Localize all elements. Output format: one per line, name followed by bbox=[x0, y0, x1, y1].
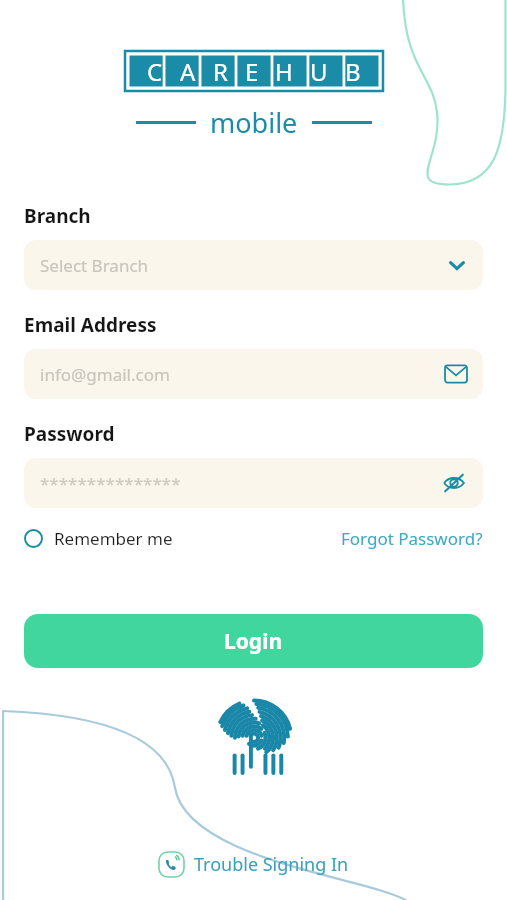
staticText: mobile bbox=[210, 104, 298, 141]
staticText: A bbox=[180, 55, 196, 88]
staticText: Remember me bbox=[54, 527, 173, 550]
button[interactable]: Remember me bbox=[24, 527, 173, 550]
staticText: Email Address bbox=[24, 312, 157, 338]
staticText: info@gmail.com bbox=[40, 363, 170, 386]
other: Email bbox=[445, 363, 467, 385]
staticText: R bbox=[213, 55, 228, 88]
button[interactable]: Show password bbox=[441, 470, 467, 496]
staticText: C bbox=[147, 55, 163, 88]
staticText: U bbox=[310, 55, 328, 88]
button[interactable]: info@gmail.com bbox=[24, 349, 483, 399]
button[interactable]: Login bbox=[24, 614, 483, 668]
staticText: Branch bbox=[24, 203, 91, 229]
staticText: *************** bbox=[40, 472, 181, 495]
staticText: Select Branch bbox=[40, 254, 149, 277]
staticText: Forgot Password? bbox=[341, 527, 483, 550]
button[interactable]: *************** bbox=[24, 458, 483, 508]
staticText: H bbox=[275, 55, 293, 88]
button[interactable]: Forgot Password? bbox=[341, 527, 483, 550]
staticText: E bbox=[245, 55, 259, 88]
staticText: B bbox=[345, 55, 361, 88]
button[interactable]: Select Branch bbox=[24, 240, 483, 290]
staticText: Password bbox=[24, 421, 115, 447]
staticText: Trouble Signing In bbox=[194, 852, 349, 877]
staticText: Login bbox=[224, 627, 283, 656]
button[interactable]: Trouble Signing In bbox=[0, 851, 507, 900]
button[interactable]: Fingerprint login bbox=[208, 690, 300, 782]
